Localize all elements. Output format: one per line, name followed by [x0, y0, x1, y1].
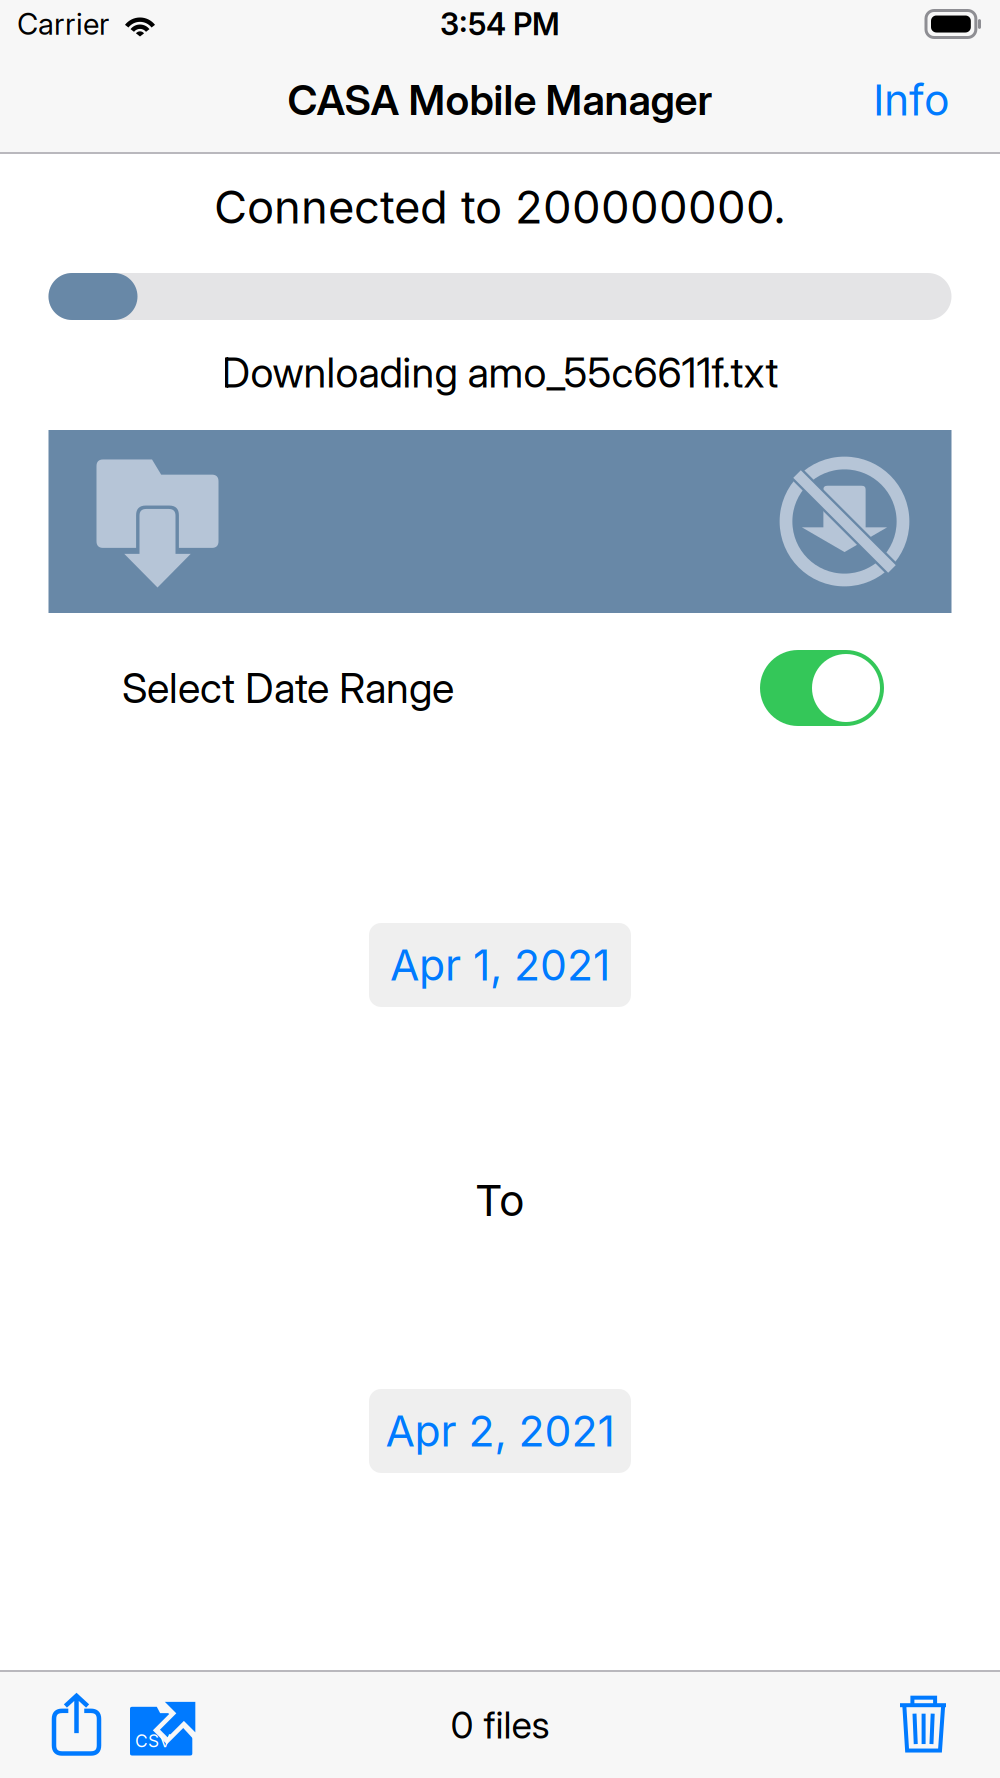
staticText: 0 files: [450, 1702, 549, 1748]
staticText: Downloading amo_55c6611f.txt: [221, 347, 778, 397]
button[interactable]: Apr 2, 2021: [369, 1389, 631, 1473]
staticText: 3:54 PM: [440, 5, 560, 42]
button[interactable]: Export CSV: [119, 1672, 212, 1777]
button[interactable]: Delete: [882, 1672, 964, 1777]
staticText: To: [475, 1175, 525, 1226]
staticText: Info: [873, 74, 950, 126]
staticText: Apr 2, 2021: [385, 1405, 614, 1457]
button[interactable]: Download files: [48, 429, 238, 613]
staticText: CSV: [135, 1730, 171, 1751]
staticText: Apr 1, 2021: [390, 939, 610, 991]
staticText: Connected to 200000000.: [214, 180, 786, 234]
button[interactable]: Stop download: [759, 429, 951, 613]
staticText: Select Date Range: [122, 663, 454, 713]
button[interactable]: Info: [857, 52, 966, 148]
staticText: Carrier: [17, 6, 109, 42]
button[interactable]: Apr 1, 2021: [369, 923, 631, 1007]
button[interactable]: Select Date Range: [760, 650, 884, 726]
staticText: CASA Mobile Manager: [287, 75, 712, 125]
button[interactable]: Share: [34, 1672, 119, 1777]
